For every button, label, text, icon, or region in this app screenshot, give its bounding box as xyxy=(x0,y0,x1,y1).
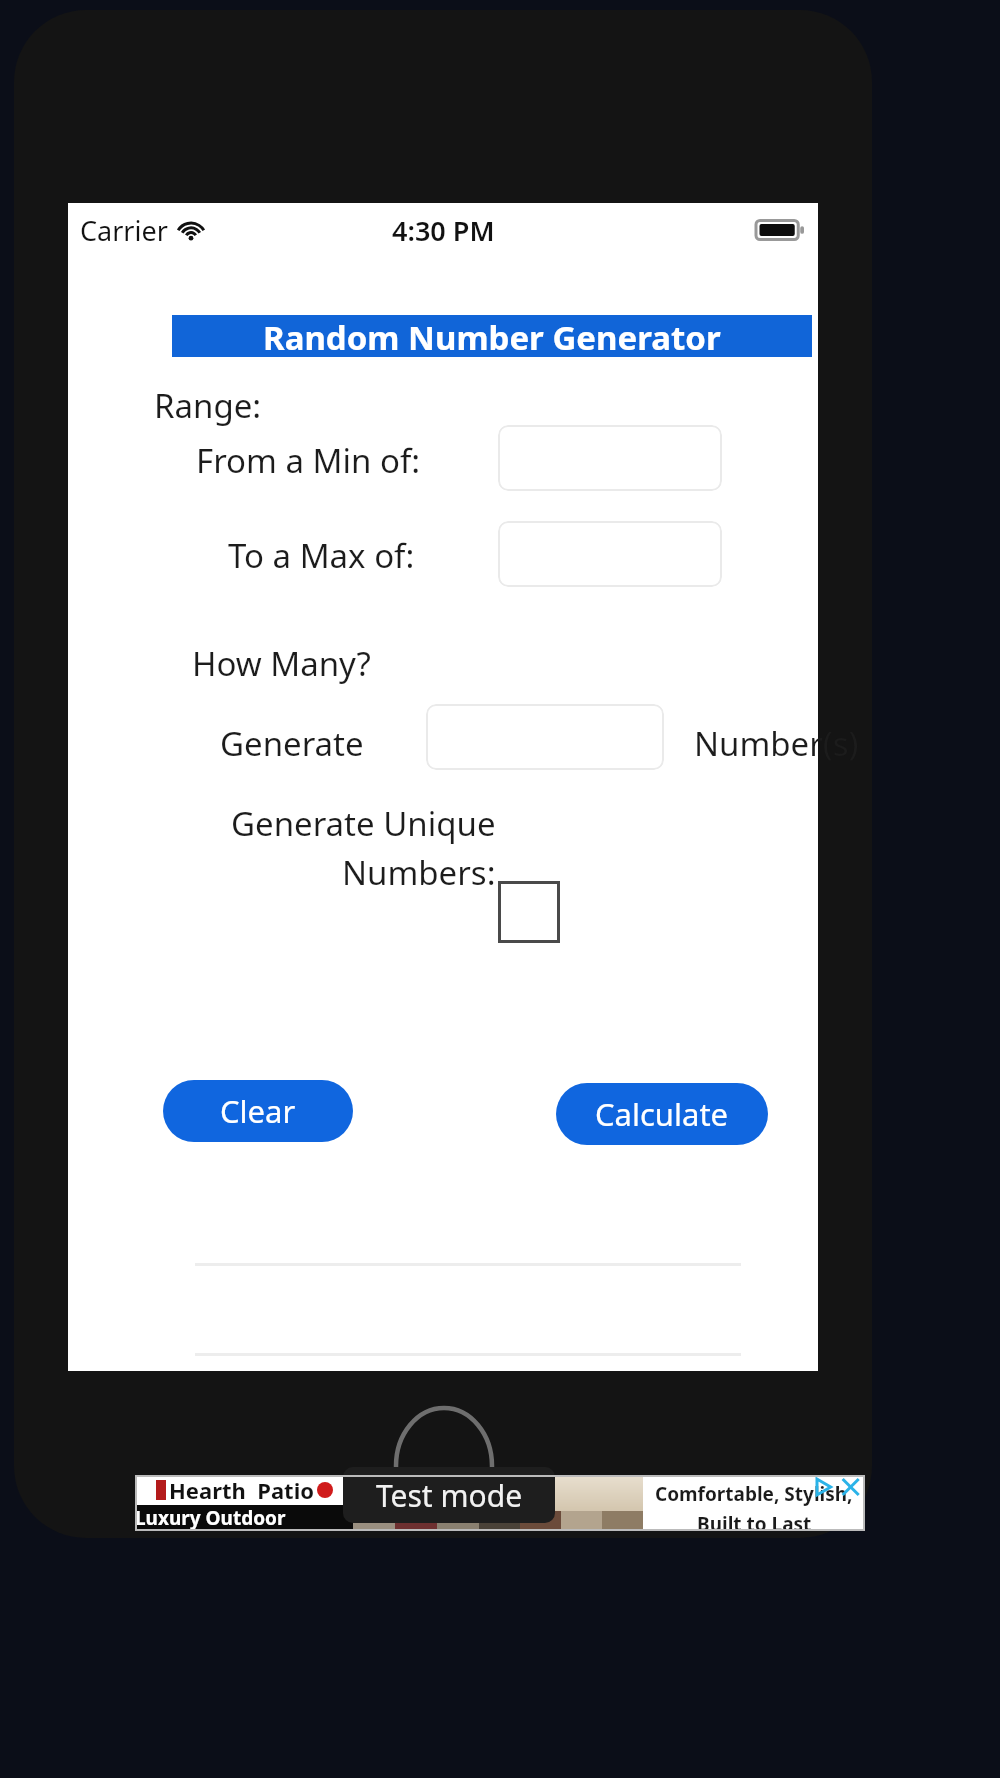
staticText: Calculate xyxy=(595,1093,729,1135)
button[interactable]: Advertisement xyxy=(135,1475,865,1531)
staticText: How Many? xyxy=(192,641,371,686)
staticText: To a Max of: xyxy=(228,533,415,578)
staticText: 4:30 PM xyxy=(392,212,495,249)
button[interactable] xyxy=(426,704,664,770)
staticText: Random Number Generator xyxy=(263,315,721,357)
staticText: Number(s) xyxy=(694,721,859,766)
staticText: Luxury Outdoor Furniture xyxy=(135,1505,353,1531)
staticText: Range: xyxy=(154,383,262,428)
staticText: Test mode xyxy=(376,1475,523,1516)
staticText: Hearth Patio xyxy=(169,1475,314,1505)
staticText: Generate xyxy=(220,721,364,766)
staticText: Clear xyxy=(220,1090,296,1132)
button[interactable]: Calculate xyxy=(556,1083,768,1145)
staticText: Carrier xyxy=(80,212,168,249)
button[interactable]: Random Number Generator xyxy=(172,315,812,357)
staticText: Numbers: xyxy=(342,850,496,895)
staticText: From a Min of: xyxy=(196,438,421,483)
staticText: Generate Unique xyxy=(231,801,496,846)
staticText: Comfortable, Stylish, xyxy=(655,1481,853,1507)
button[interactable]: Clear xyxy=(163,1080,353,1142)
button[interactable] xyxy=(498,425,722,491)
staticText: Built to Last xyxy=(697,1511,812,1531)
button[interactable]: Generate unique numbers checkbox xyxy=(498,881,560,943)
button[interactable] xyxy=(498,521,722,587)
